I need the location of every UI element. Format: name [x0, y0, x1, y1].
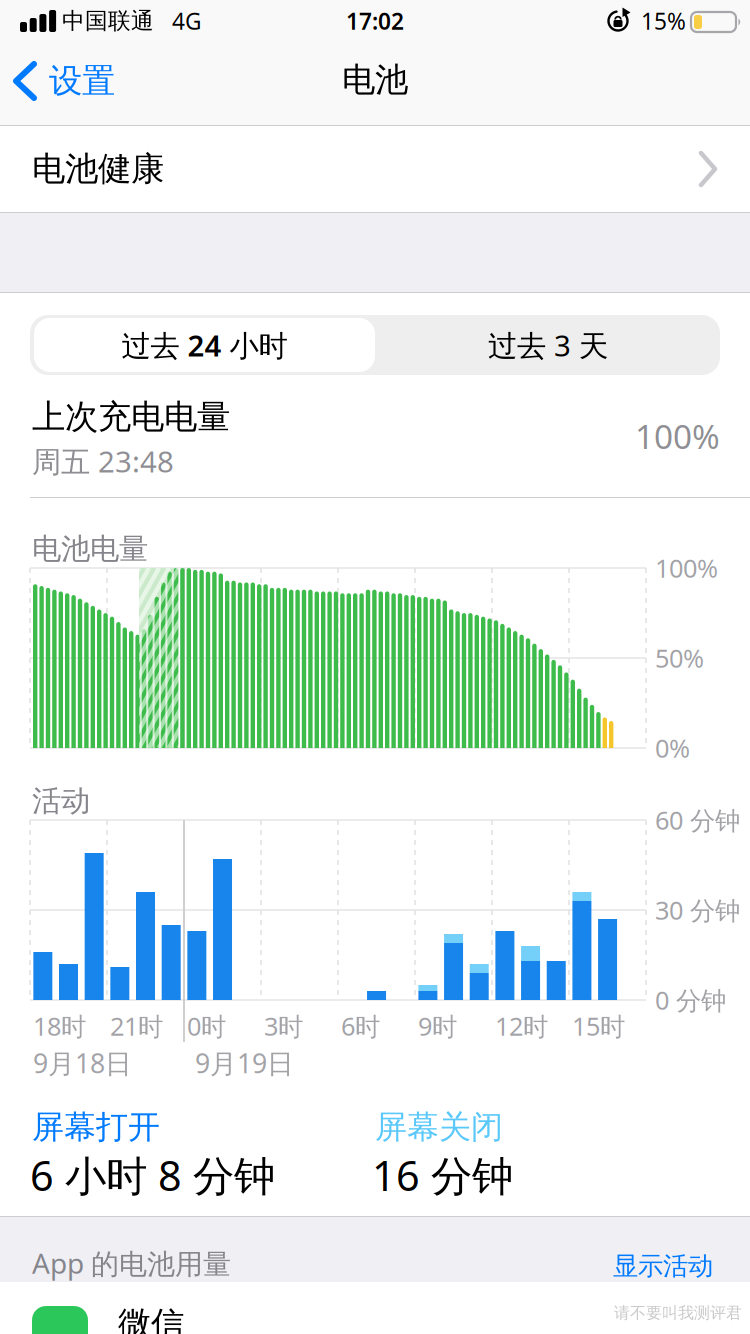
staticText: 0%	[655, 731, 690, 765]
staticText: 中国联通	[62, 7, 154, 35]
staticText: 上次充电电量	[32, 396, 230, 437]
staticText: 9时	[418, 1009, 457, 1043]
button[interactable]: 设置	[12, 53, 115, 109]
staticText: 周五 23:48	[32, 441, 174, 480]
staticText: 50%	[655, 641, 704, 675]
staticText: 屏幕打开	[32, 1107, 160, 1147]
staticText: 过去 3 天	[488, 325, 608, 364]
staticText: 100%	[655, 551, 718, 585]
staticText: 9月19日	[195, 1045, 294, 1081]
staticText: 0 分钟	[655, 983, 726, 1017]
staticText: 60 分钟	[655, 803, 740, 837]
staticText: 12时	[495, 1009, 548, 1043]
staticText: 过去 24 小时	[121, 325, 287, 364]
staticText: 30 分钟	[655, 893, 740, 927]
staticText: 显示活动	[613, 1250, 713, 1281]
staticText: 100%	[635, 414, 720, 458]
staticText: 6 小时 8 分钟	[30, 1148, 275, 1202]
staticText: 9月18日	[33, 1045, 132, 1081]
staticText: 16 分钟	[372, 1148, 513, 1202]
staticText: 3时	[264, 1009, 303, 1043]
staticText: 4G	[172, 6, 202, 36]
staticText: 18时	[33, 1009, 86, 1043]
staticText: 请不要叫我测评君	[614, 1303, 742, 1323]
staticText: App 的电池用量	[32, 1244, 231, 1282]
staticText: 6时	[341, 1009, 380, 1043]
staticText: 屏幕关闭	[375, 1107, 503, 1147]
button[interactable]: 电池健康	[0, 126, 750, 212]
button[interactable]: 过去 24 小时	[32, 315, 377, 375]
button[interactable]: 过去 3 天	[378, 315, 718, 375]
staticText: 电池健康	[32, 148, 164, 189]
staticText: 15%	[641, 6, 686, 36]
staticText: 21时	[110, 1009, 163, 1043]
staticText: 电池电量	[32, 531, 148, 567]
staticText: 17:02	[346, 6, 404, 36]
button[interactable]: 微信	[0, 1290, 750, 1334]
staticText: 微信	[118, 1303, 184, 1334]
staticText: 电池	[342, 59, 408, 100]
staticText: 设置	[49, 60, 115, 101]
button[interactable]: 显示活动	[613, 1236, 713, 1296]
staticText: 0时	[187, 1009, 226, 1043]
staticText: 活动	[32, 783, 90, 819]
staticText: 15时	[572, 1009, 625, 1043]
